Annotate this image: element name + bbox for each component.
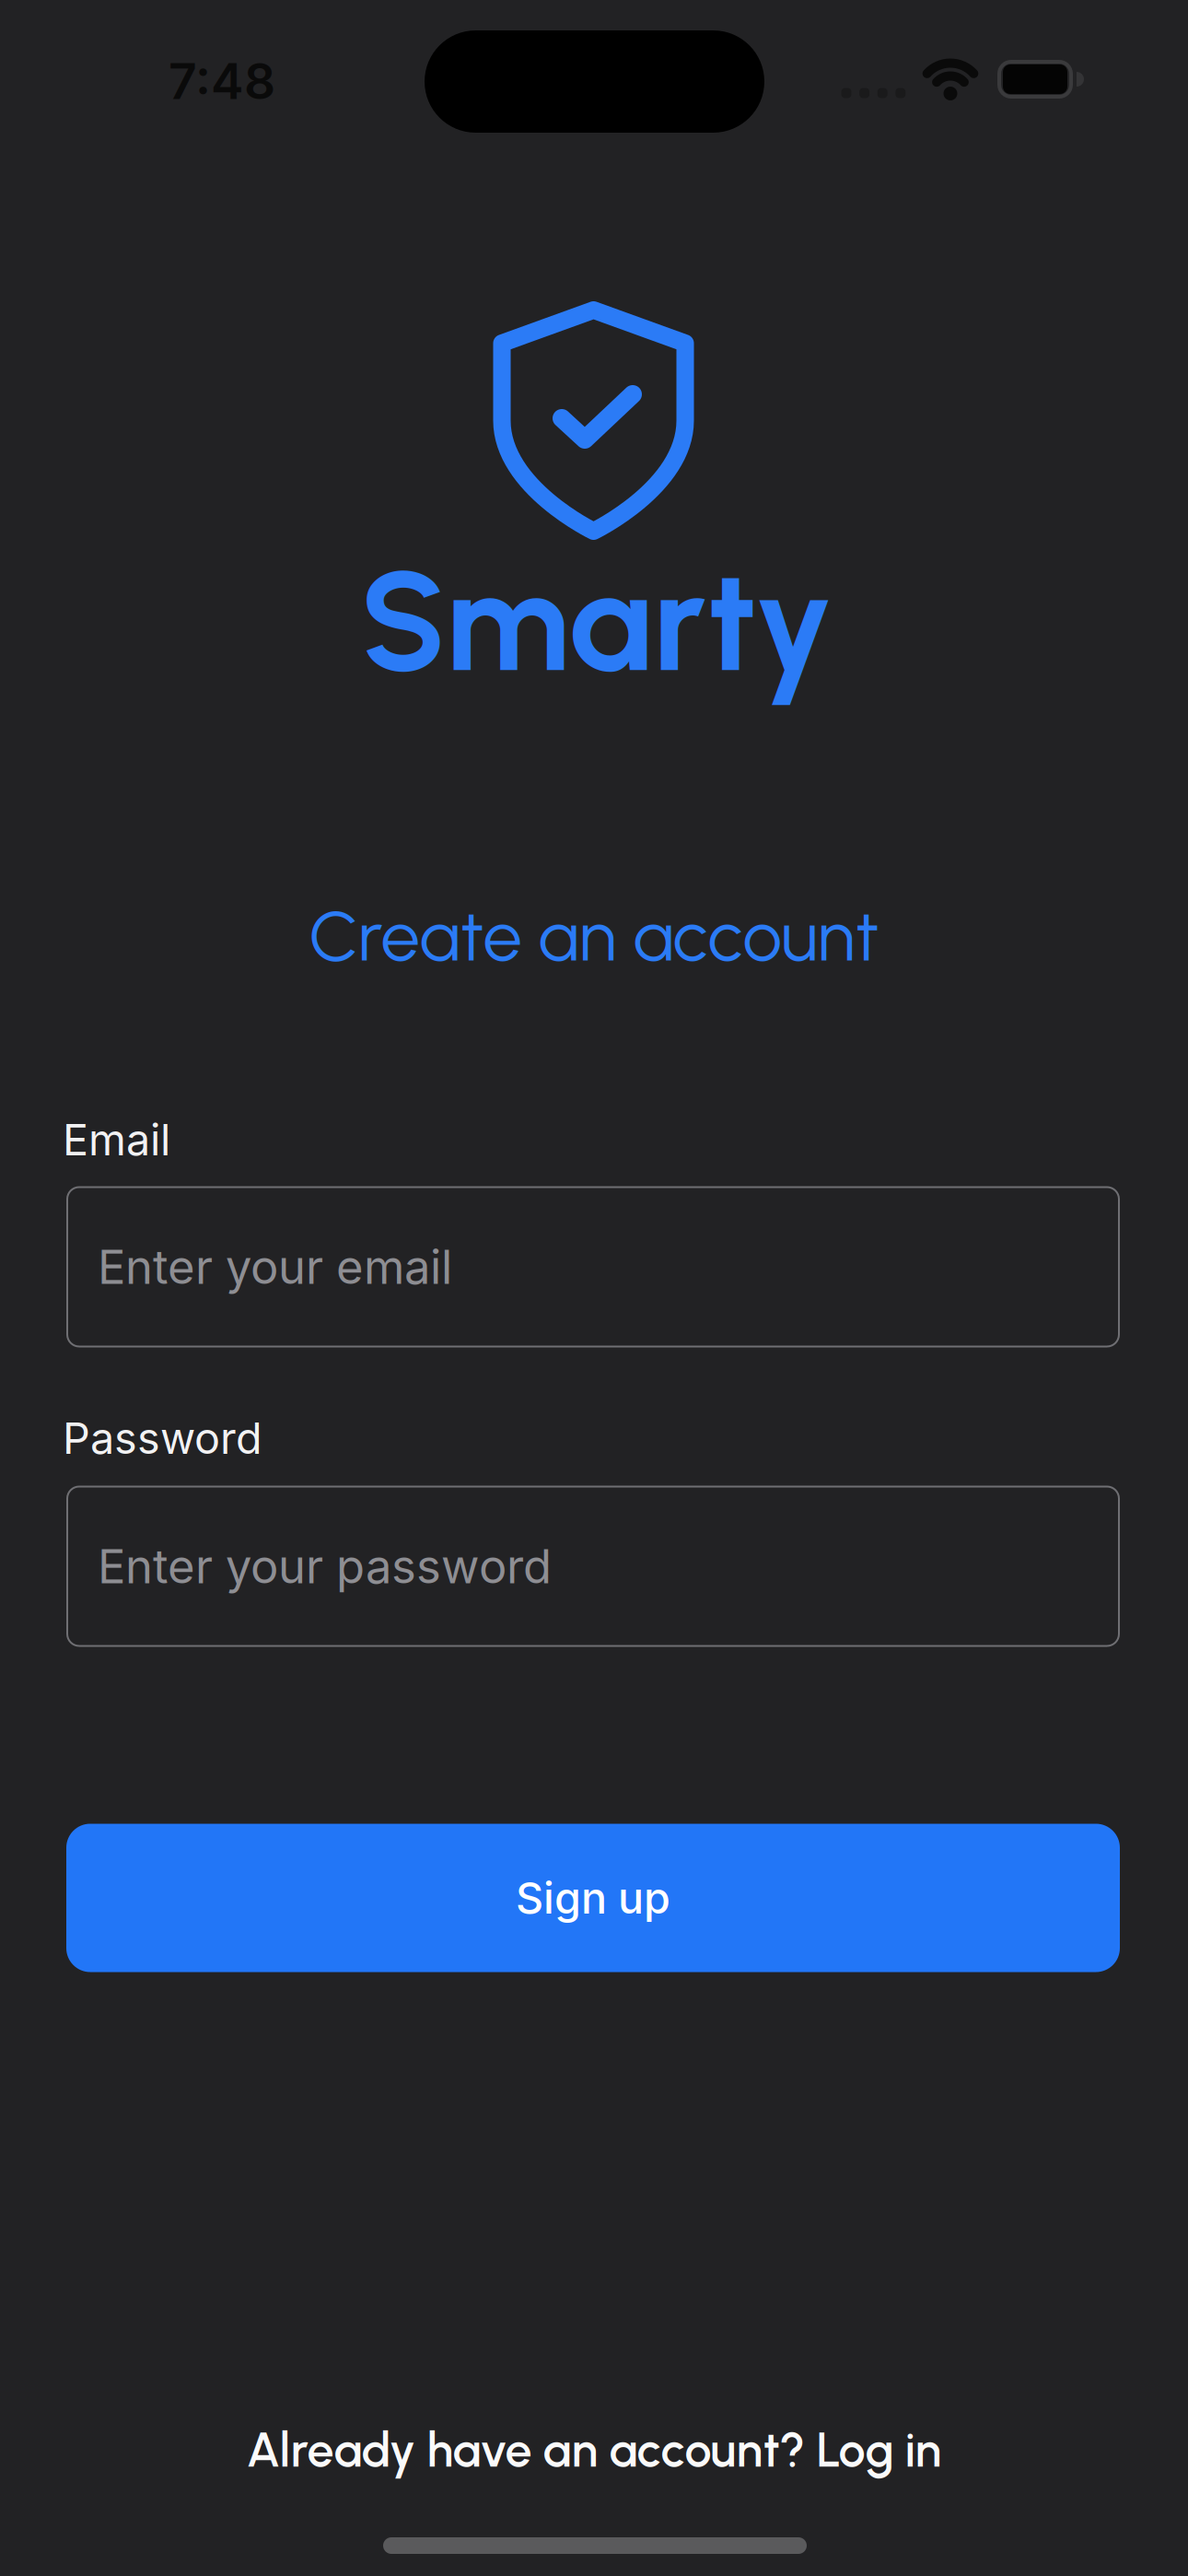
- staticText: Enter your email: [98, 1239, 452, 1295]
- staticText: Smarty: [360, 537, 834, 705]
- staticText: Password: [63, 1412, 262, 1464]
- staticText: Already have an account? Log in: [246, 2421, 942, 2479]
- staticText: 7:48: [169, 51, 275, 111]
- button[interactable]: Sign up: [66, 1824, 1120, 1972]
- staticText: Sign up: [516, 1872, 670, 1924]
- button[interactable]: Already have an account? Log in: [246, 2421, 942, 2479]
- staticText: Email: [63, 1114, 170, 1166]
- button[interactable]: Enter your password: [66, 1486, 1120, 1647]
- staticText: Create an account: [309, 894, 879, 978]
- staticText: Enter your password: [98, 1538, 552, 1594]
- button[interactable]: Enter your email: [66, 1186, 1120, 1347]
